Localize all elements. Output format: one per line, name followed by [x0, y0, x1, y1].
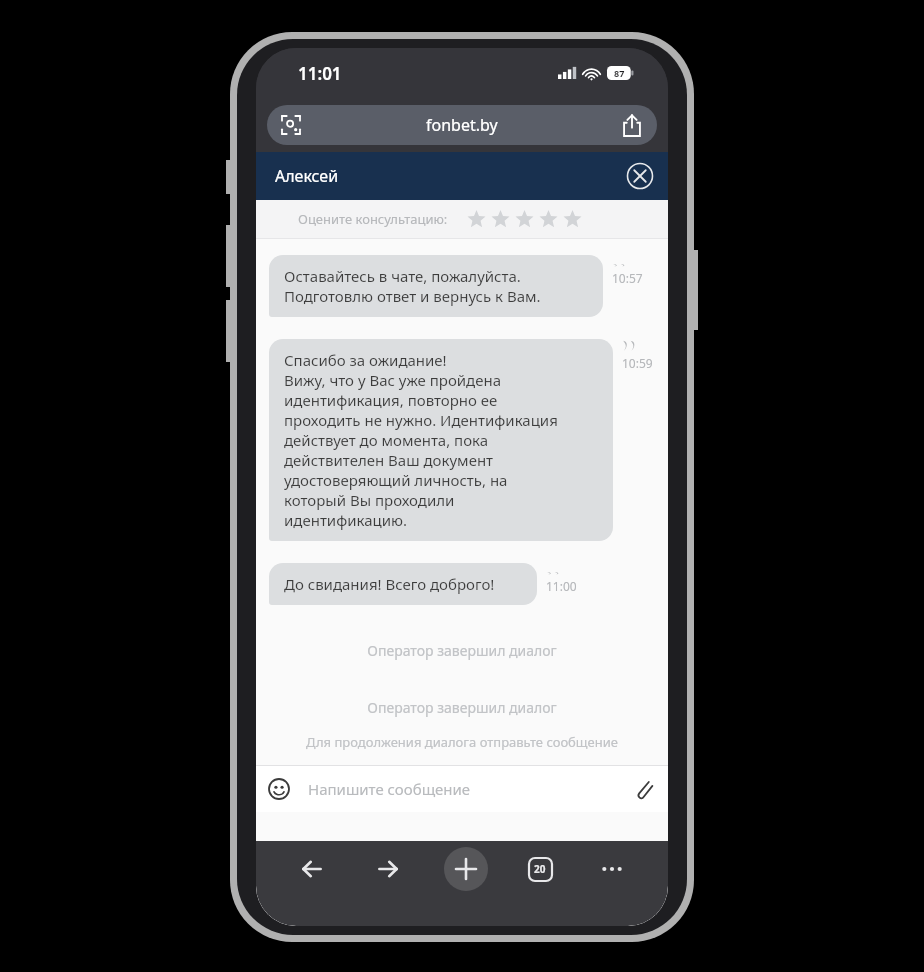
staticText: действителен Ваш документ: [284, 450, 494, 470]
staticText: проходить не нужно. Идентификация: [284, 410, 558, 430]
staticText: который Вы проходили: [284, 490, 455, 510]
button[interactable]: Page settings: [279, 113, 303, 137]
button[interactable]: Спасибо за ожидание!: [269, 339, 613, 541]
button[interactable]: Rate star: [536, 207, 560, 231]
button[interactable]: Close chat: [626, 162, 654, 190]
button[interactable]: Rate star: [488, 207, 512, 231]
staticText: Вижу, что у Вас уже пройдена: [284, 370, 502, 390]
button[interactable]: More: [591, 848, 633, 890]
staticText: действует до момента, пока: [284, 430, 489, 450]
staticText: 11:01: [298, 62, 342, 85]
button[interactable]: Оставайтесь в чате, пожалуйста.: [269, 255, 603, 317]
staticText: Для продолжения диалога отправьте сообще…: [256, 733, 668, 751]
staticText: 87: [614, 67, 625, 79]
staticText: Оператор завершил диалог: [256, 698, 668, 717]
button[interactable]: Напишите сообщение: [256, 766, 668, 812]
button[interactable]: До свидания! Всего доброго!: [269, 563, 537, 605]
staticText: Подготовлю ответ и вернусь к Вам.: [284, 286, 541, 306]
button[interactable]: Rate star: [512, 207, 536, 231]
button[interactable]: New tab: [444, 847, 488, 891]
staticText: Оператор завершил диалог: [256, 641, 668, 660]
button[interactable]: fonbet.by: [267, 105, 657, 145]
staticText: Напишите сообщение: [308, 779, 471, 799]
staticText: Алексей: [275, 165, 339, 187]
staticText: Спасибо за ожидание!: [284, 350, 447, 370]
staticText: Оцените консультацию:: [298, 210, 448, 228]
staticText: Оставайтесь в чате, пожалуйста.: [284, 266, 521, 286]
staticText: До свидания! Всего доброго!: [284, 574, 495, 594]
button[interactable]: Rate star: [464, 207, 488, 231]
button[interactable]: Back: [291, 848, 333, 890]
button[interactable]: Forward: [367, 848, 409, 890]
staticText: fonbet.by: [426, 114, 498, 136]
button[interactable]: Share: [621, 114, 643, 136]
staticText: удостоверяющий личность, на: [284, 470, 508, 490]
staticText: идентификацию.: [284, 510, 408, 530]
button[interactable]: Tabs: [523, 852, 557, 886]
button[interactable]: Rate star: [560, 207, 584, 231]
staticText: 10:57: [612, 270, 643, 286]
staticText: 10:59: [622, 355, 653, 371]
staticText: идентификация, повторно ее: [284, 390, 498, 410]
staticText: 20: [534, 862, 546, 876]
staticText: 11:00: [546, 578, 577, 594]
